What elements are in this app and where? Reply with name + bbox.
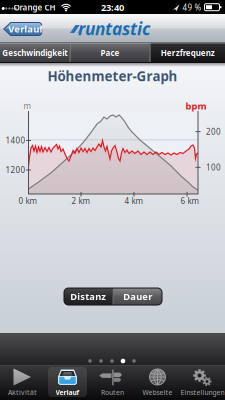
button[interactable]: Dauer [113, 288, 162, 305]
staticText: Einstellungen [180, 388, 224, 397]
button[interactable]: Verlauf [3, 22, 42, 36]
staticText: 200 [206, 126, 221, 137]
staticText: 1400 [5, 135, 25, 146]
staticText: Webseite [142, 388, 172, 397]
button[interactable]: Routen [90, 365, 135, 400]
staticText: Geschwindigkeit [2, 48, 67, 58]
staticText: 49 % [182, 2, 201, 13]
staticText: Dauer [123, 290, 152, 303]
staticText: 4 km [124, 196, 142, 206]
staticText: bpm [185, 100, 206, 112]
staticText: runtastic [78, 17, 150, 40]
staticText: Distanz [70, 290, 106, 303]
staticText: Höhenmeter-Graph [47, 67, 177, 85]
button[interactable]: Einstellungen [180, 365, 225, 400]
button[interactable]: Herzfrequenz [150, 43, 225, 63]
button[interactable]: Webseite [135, 365, 180, 400]
staticText: Routen [101, 388, 124, 397]
staticText: Aktivität [8, 388, 37, 397]
staticText: Herzfrequenz [161, 48, 215, 58]
staticText: 2 km [71, 196, 89, 206]
button[interactable]: Aktivität [0, 365, 45, 400]
staticText: 1200 [5, 165, 25, 175]
staticText: 0 km [18, 196, 36, 206]
staticText: 6 km [180, 196, 198, 206]
button[interactable]: Pace [70, 43, 149, 63]
button[interactable]: Geschwindigkeit [0, 43, 69, 63]
button[interactable]: Verlauf [45, 365, 90, 400]
staticText: 100 [206, 162, 221, 173]
staticText: Verlauf [8, 23, 43, 35]
staticText: 23:40 [101, 1, 124, 14]
staticText: m [23, 101, 30, 111]
staticText: Verlauf [55, 388, 79, 397]
staticText: Orange CH [13, 2, 55, 13]
staticText: Pace [100, 48, 119, 58]
button[interactable]: Distanz [64, 288, 112, 305]
